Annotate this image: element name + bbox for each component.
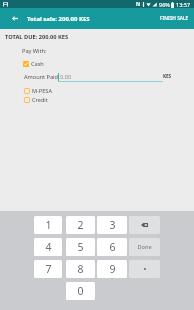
button[interactable]: 6 [97, 238, 127, 256]
staticText: Cash [31, 60, 44, 68]
button[interactable]: 3 [97, 216, 127, 234]
button[interactable]: M-PESA [24, 86, 194, 96]
staticText: N [136, 1, 141, 8]
staticText: 6 [109, 240, 116, 254]
staticText: Pay With: [22, 47, 47, 55]
staticText: Amount Paid: [24, 73, 60, 81]
button[interactable]: Back [5, 8, 25, 29]
button[interactable]: 7 [34, 260, 62, 278]
staticText: 3 [109, 218, 116, 232]
staticText: KES [163, 73, 172, 79]
button[interactable]: 8 [66, 260, 95, 278]
staticText: 13:57 [176, 1, 191, 8]
button[interactable]: FINISH SALE [154, 8, 194, 29]
button[interactable]: Decimal point [129, 260, 160, 278]
staticText: 0.00 [60, 73, 72, 81]
staticText: 1 [45, 218, 52, 232]
staticText: 2 [77, 218, 84, 232]
button[interactable]: Backspace [129, 216, 160, 234]
button[interactable]: Done [129, 238, 160, 256]
button[interactable]: Cash [23, 59, 194, 69]
staticText: 7 [45, 262, 52, 276]
staticText: 9 [109, 262, 116, 276]
staticText: Done [137, 243, 152, 251]
button[interactable]: 4 [34, 238, 62, 256]
staticText: M-PESA [32, 87, 53, 95]
button[interactable]: 9 [97, 260, 127, 278]
button[interactable]: 1 [34, 216, 62, 234]
staticText: 0 [77, 284, 84, 298]
button[interactable]: 5 [66, 238, 95, 256]
staticText: 96% [159, 1, 170, 8]
button[interactable]: Credit [24, 95, 194, 105]
staticText: 5 [77, 240, 84, 254]
button[interactable]: 0 [66, 282, 95, 300]
staticText: TOTAL DUE: 200.00 KES [5, 33, 69, 41]
button[interactable]: 2 [66, 216, 95, 234]
staticText: FINISH SALE [160, 15, 189, 22]
staticText: Total sale: 200.00 KES [27, 15, 90, 23]
staticText: 8 [77, 262, 84, 276]
staticText: 4 [45, 240, 52, 254]
staticText: Credit [32, 96, 48, 104]
